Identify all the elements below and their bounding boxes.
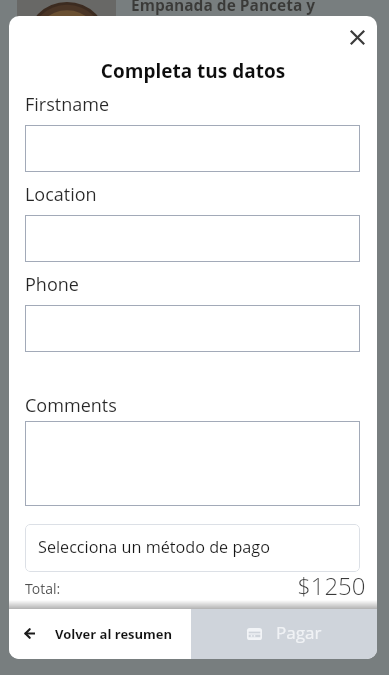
button[interactable]: Campo de texto: [25, 215, 360, 262]
button[interactable]: Pagar: [191, 609, 377, 659]
staticText: Comments: [25, 393, 117, 418]
staticText: Total:: [25, 579, 61, 598]
staticText: Completa tus datos: [9, 58, 377, 84]
button[interactable]: Volver al resumen: [9, 609, 191, 659]
staticText: Location: [25, 182, 97, 207]
staticText: Firstname: [25, 92, 110, 117]
staticText: Phone: [25, 272, 79, 297]
button[interactable]: Cerrar: [343, 23, 372, 52]
staticText: Selecciona un método de pago: [38, 536, 270, 558]
button[interactable]: Campo de texto: [25, 421, 360, 506]
button[interactable]: Campo de texto: [25, 125, 360, 172]
button[interactable]: Selecciona un método de pago: [25, 524, 360, 572]
staticText: Empanada de Panceta y ciruela: [131, 0, 316, 35]
staticText: Volver al resumen: [55, 625, 173, 643]
staticText: Pagar: [276, 621, 322, 644]
button[interactable]: Campo de texto: [25, 305, 360, 352]
staticText: $1250: [297, 569, 366, 602]
